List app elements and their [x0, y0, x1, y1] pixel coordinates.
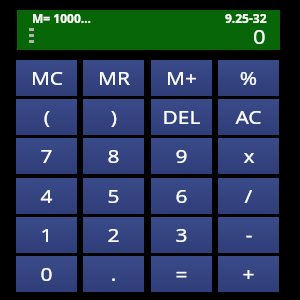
- staticText: 6: [175, 184, 188, 209]
- staticText: x: [243, 144, 255, 169]
- staticText: /: [244, 184, 252, 209]
- staticText: 0: [253, 24, 266, 50]
- button[interactable]: 8: [83, 138, 144, 174]
- button[interactable]: /: [218, 178, 279, 214]
- staticText: 0: [40, 262, 53, 287]
- button[interactable]: =: [151, 256, 212, 292]
- staticText: (: [43, 105, 50, 130]
- staticText: 2: [107, 223, 120, 248]
- button[interactable]: Menu: [29, 28, 34, 43]
- button[interactable]: +: [218, 256, 279, 292]
- button[interactable]: ): [83, 99, 144, 135]
- button[interactable]: 2: [83, 217, 144, 253]
- button[interactable]: MR: [83, 60, 144, 96]
- staticText: 7: [40, 144, 53, 169]
- staticText: AC: [235, 105, 262, 130]
- staticText: 3: [175, 223, 188, 248]
- button[interactable]: 6: [151, 178, 212, 214]
- staticText: =: [175, 262, 188, 287]
- button[interactable]: .: [83, 256, 144, 292]
- staticText: DEL: [162, 105, 201, 130]
- staticText: 5: [107, 184, 120, 209]
- staticText: 8: [107, 144, 120, 169]
- button[interactable]: M+: [151, 60, 212, 96]
- staticText: M+: [166, 66, 197, 91]
- button[interactable]: MC: [16, 60, 77, 96]
- staticText: .: [111, 262, 116, 287]
- button[interactable]: M= 1000...: [17, 10, 280, 50]
- staticText: MR: [98, 66, 130, 91]
- staticText: MC: [31, 66, 63, 91]
- button[interactable]: 4: [16, 178, 77, 214]
- button[interactable]: 5: [83, 178, 144, 214]
- staticText: 9.25-32: [225, 10, 267, 26]
- button[interactable]: -: [218, 217, 279, 253]
- staticText: ): [110, 105, 117, 130]
- staticText: %: [240, 66, 257, 91]
- button[interactable]: %: [218, 60, 279, 96]
- button[interactable]: 7: [16, 138, 77, 174]
- staticText: -: [245, 223, 252, 248]
- button[interactable]: 1: [16, 217, 77, 253]
- button[interactable]: DEL: [151, 99, 212, 135]
- button[interactable]: x: [218, 138, 279, 174]
- staticText: M= 1000...: [32, 10, 91, 26]
- button[interactable]: (: [16, 99, 77, 135]
- staticText: 1: [40, 223, 53, 248]
- staticText: +: [242, 262, 255, 287]
- button[interactable]: AC: [218, 99, 279, 135]
- button[interactable]: 3: [151, 217, 212, 253]
- button[interactable]: 0: [16, 256, 77, 292]
- button[interactable]: 9: [151, 138, 212, 174]
- staticText: 9: [175, 144, 188, 169]
- staticText: 4: [40, 184, 53, 209]
